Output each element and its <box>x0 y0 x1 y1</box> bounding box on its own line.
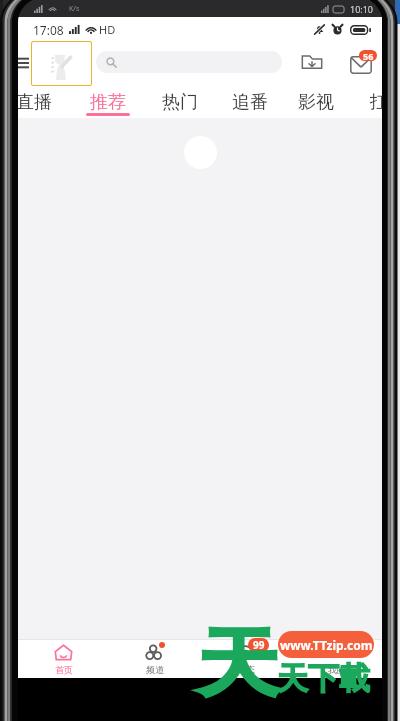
button[interactable]: 热门 <box>157 91 203 118</box>
staticText: 天 <box>197 618 280 711</box>
button[interactable]: 直播 <box>11 91 57 118</box>
staticText: 追番 <box>232 91 268 114</box>
button[interactable]: 影视 <box>293 91 339 118</box>
button[interactable]: 扛 <box>366 91 392 118</box>
button[interactable]: 频道 <box>109 640 200 678</box>
staticText: 10:10 <box>350 3 374 15</box>
staticText: 17:08 <box>33 22 64 38</box>
button[interactable]: 我的 <box>291 640 382 678</box>
staticText: 热门 <box>162 91 198 114</box>
staticText: 首页 <box>55 664 73 675</box>
staticText: 动态 <box>237 664 255 675</box>
staticText: HD <box>99 22 116 37</box>
staticText: 影视 <box>298 91 334 114</box>
staticText: 频道 <box>146 664 164 675</box>
button[interactable]: Menu <box>15 53 31 73</box>
staticText: www.TTzip.com <box>280 637 373 653</box>
staticText: 56 <box>363 50 374 61</box>
button[interactable]: 动态 <box>200 640 291 678</box>
button[interactable]: 首页 <box>18 640 109 678</box>
staticText: 天下載 <box>277 659 370 698</box>
button[interactable]: Profile avatar <box>32 42 91 85</box>
staticText: 我的 <box>328 664 346 675</box>
button[interactable]: Downloads <box>298 47 326 75</box>
staticText: 扛 <box>370 91 388 114</box>
button[interactable]: 追番 <box>227 91 273 118</box>
staticText: 推荐 <box>90 91 126 114</box>
staticText: 99 <box>253 638 265 652</box>
button[interactable]: Search <box>96 51 282 73</box>
button[interactable]: Messages <box>347 48 379 80</box>
staticText: K/s <box>69 4 80 14</box>
button[interactable]: 推荐 <box>85 91 131 118</box>
staticText: 直播 <box>16 91 52 114</box>
